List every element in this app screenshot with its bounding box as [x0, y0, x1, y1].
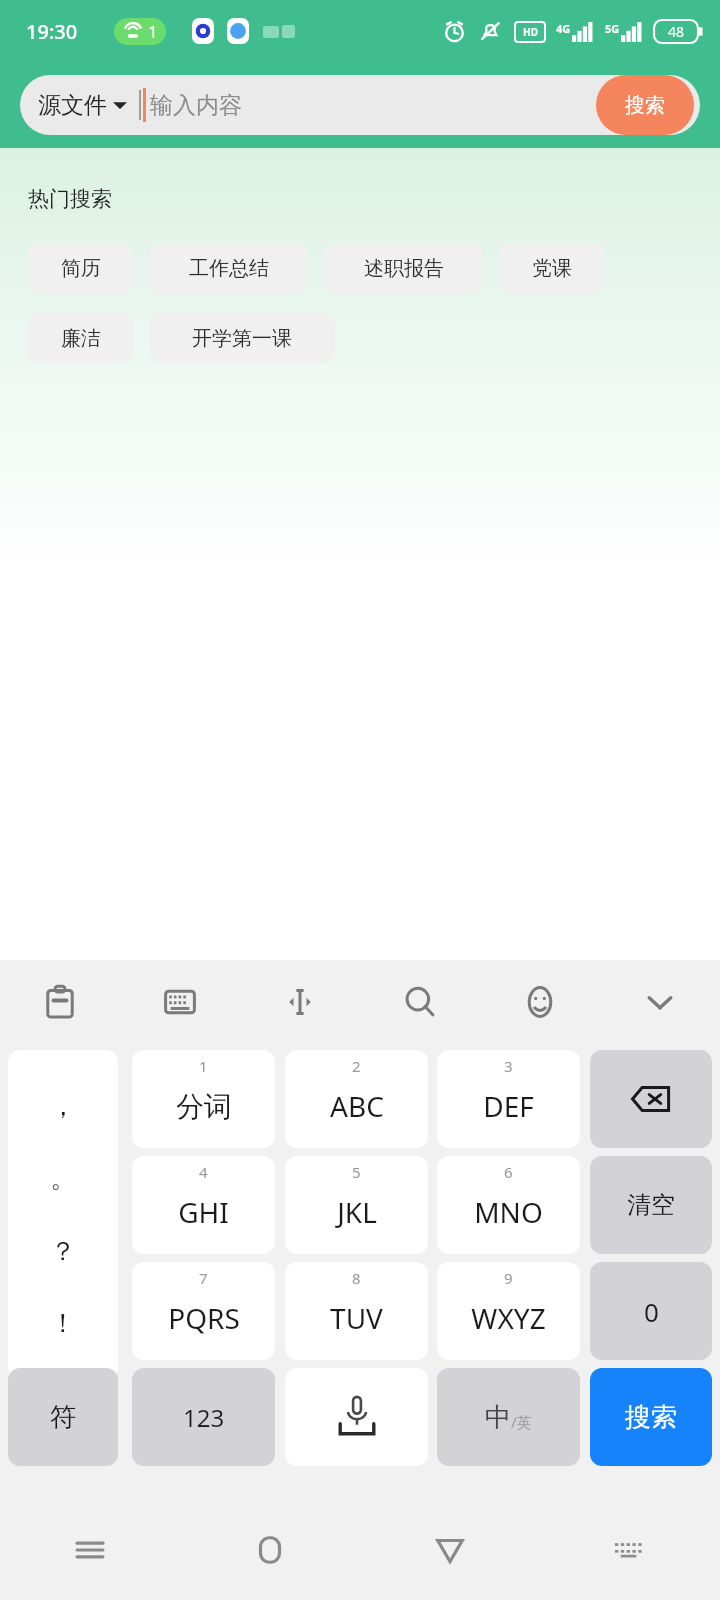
button[interactable]: 3	[437, 1050, 580, 1148]
button[interactable]: Home	[180, 1500, 360, 1600]
button[interactable]: 开学第一课	[149, 313, 335, 363]
button[interactable]: Back	[360, 1500, 540, 1600]
button[interactable]	[590, 1050, 712, 1148]
button[interactable]: Keyboard layout	[120, 960, 240, 1044]
button[interactable]: 简历	[28, 243, 133, 293]
button[interactable]: 6	[437, 1156, 580, 1254]
staticText: PQRS	[168, 1299, 240, 1337]
button[interactable]: 清空	[590, 1156, 712, 1254]
button[interactable]	[285, 1368, 428, 1466]
button[interactable]: 1	[132, 1050, 275, 1148]
staticText: 48	[668, 22, 685, 41]
button[interactable]: Recents	[0, 1500, 180, 1600]
staticText: 开学第一课	[192, 326, 292, 351]
button[interactable]: 0	[590, 1262, 712, 1360]
button[interactable]: 党课	[499, 243, 604, 293]
staticText: 清空	[627, 1190, 675, 1220]
button[interactable]: Clipboard	[0, 960, 120, 1044]
button[interactable]: 搜索	[590, 1368, 712, 1466]
staticText: DEF	[483, 1087, 534, 1125]
staticText: 输入内容	[150, 91, 242, 120]
staticText: 2	[352, 1056, 361, 1076]
staticText: 1	[148, 20, 158, 43]
staticText: MNO	[474, 1193, 543, 1231]
staticText: 分词	[176, 1089, 232, 1124]
button[interactable]: 搜索	[596, 75, 694, 135]
button[interactable]: 7	[132, 1262, 275, 1360]
staticText: 9	[504, 1268, 513, 1288]
button[interactable]: 廉洁	[28, 313, 133, 363]
staticText: 8	[352, 1268, 361, 1288]
button[interactable]: 中	[437, 1368, 580, 1466]
staticText: 简历	[61, 256, 101, 281]
button[interactable]: 2	[285, 1050, 428, 1148]
staticText: 述职报告	[364, 256, 444, 281]
button[interactable]: 源文件	[20, 75, 700, 135]
button[interactable]: 工作总结	[149, 243, 308, 293]
staticText: ！	[50, 1307, 76, 1340]
staticText: 4G	[556, 21, 571, 36]
staticText: JKL	[337, 1193, 377, 1231]
button[interactable]: ，	[8, 1050, 118, 1380]
staticText: 5G	[605, 21, 620, 36]
staticText: 廉洁	[61, 326, 101, 351]
staticText: 中	[485, 1401, 511, 1434]
button[interactable]: 4	[132, 1156, 275, 1254]
staticText: 4	[199, 1162, 208, 1182]
button[interactable]: Switch keyboard	[540, 1500, 720, 1600]
button[interactable]: Move cursor	[240, 960, 360, 1044]
staticText: 党课	[532, 256, 572, 281]
staticText: 符	[50, 1401, 76, 1434]
staticText: 搜索	[625, 93, 665, 118]
button[interactable]: 123	[132, 1368, 275, 1466]
button[interactable]: 9	[437, 1262, 580, 1360]
staticText: ，	[50, 1090, 76, 1123]
staticText: 5	[352, 1162, 361, 1182]
button[interactable]: Search	[360, 960, 480, 1044]
button[interactable]: Emoji	[480, 960, 600, 1044]
staticText: 源文件	[38, 91, 107, 120]
staticText: 工作总结	[189, 256, 269, 281]
button[interactable]: 5	[285, 1156, 428, 1254]
staticText: 热门搜索	[28, 186, 112, 212]
staticText: ABC	[330, 1087, 384, 1125]
staticText: GHI	[178, 1193, 229, 1231]
staticText: 6	[504, 1162, 513, 1182]
staticText: 1	[199, 1056, 208, 1076]
staticText: 3	[504, 1056, 513, 1076]
staticText: TUV	[330, 1299, 383, 1337]
staticText: 搜索	[625, 1401, 677, 1434]
staticText: 0	[644, 1294, 659, 1329]
staticText: 19:30	[26, 18, 78, 45]
staticText: WXYZ	[471, 1299, 546, 1337]
button[interactable]: 述职报告	[324, 243, 483, 293]
staticText: /英	[511, 1412, 532, 1432]
button[interactable]: Hide keyboard	[600, 960, 720, 1044]
staticText: 。	[50, 1162, 76, 1195]
staticText: 123	[183, 1401, 225, 1434]
staticText: 7	[199, 1268, 208, 1288]
staticText: ？	[50, 1235, 76, 1268]
staticText: HD	[523, 25, 538, 39]
button[interactable]: 符	[8, 1368, 118, 1466]
button[interactable]: 8	[285, 1262, 428, 1360]
